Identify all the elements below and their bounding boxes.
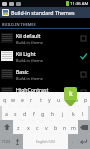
staticText: p [84, 96, 88, 103]
staticText: l [82, 110, 84, 117]
button[interactable]: r [27, 92, 36, 106]
button[interactable]: Voice input [12, 134, 23, 149]
button[interactable]: o [72, 92, 81, 106]
staticText: u [57, 96, 61, 103]
staticText: English (US) [36, 139, 55, 144]
button[interactable]: Kii Light [0, 47, 90, 65]
staticText: ?123 [2, 139, 11, 144]
button[interactable]: e [18, 92, 27, 106]
staticText: n [63, 124, 67, 131]
staticText: z [17, 124, 20, 131]
button[interactable]: English (US) [23, 134, 68, 149]
button[interactable]: b [51, 120, 60, 134]
button[interactable]: Backspace [78, 120, 90, 134]
button[interactable]: w [9, 92, 18, 106]
button[interactable]: t [36, 92, 45, 106]
staticText: Build-in theme [16, 76, 43, 81]
button[interactable]: Enter [77, 134, 90, 149]
staticText: h [51, 110, 55, 117]
staticText: HighContrast [16, 86, 49, 93]
staticText: s [14, 110, 17, 117]
staticText: d [23, 110, 27, 117]
button[interactable]: i [63, 92, 72, 106]
button[interactable]: h [48, 106, 58, 120]
staticText: t [40, 96, 42, 103]
staticText: v [45, 124, 48, 131]
button[interactable]: a [2, 106, 11, 120]
staticText: Basic [16, 68, 29, 75]
staticText: Build-in standard Themes [11, 9, 75, 16]
button[interactable]: j [58, 106, 68, 120]
staticText: Kii Light [16, 50, 36, 57]
staticText: Build-in theme [16, 40, 43, 45]
button[interactable]: Basic [0, 65, 90, 83]
button[interactable]: Symbols [0, 134, 12, 149]
button[interactable]: y [45, 92, 54, 106]
staticText: w [11, 96, 16, 103]
button[interactable]: l [78, 106, 88, 120]
button[interactable]: g [38, 106, 48, 120]
button[interactable]: z [13, 120, 23, 134]
button[interactable]: Shift [0, 120, 13, 134]
staticText: k [69, 89, 73, 99]
staticText: b [54, 124, 58, 131]
button[interactable]: x [23, 120, 33, 134]
staticText: o [75, 96, 79, 103]
staticText: y [48, 96, 51, 103]
button[interactable]: q [0, 92, 9, 106]
button[interactable]: s [11, 106, 20, 120]
staticText: i [67, 96, 69, 103]
button[interactable]: p [81, 92, 90, 106]
staticText: e [21, 96, 24, 103]
staticText: g [41, 110, 45, 117]
button[interactable]: k [68, 106, 78, 120]
staticText: Kii default [16, 32, 41, 39]
staticText: BUILD-IN THEMES [2, 22, 36, 27]
staticText: k [72, 110, 75, 117]
staticText: r [30, 96, 33, 103]
button[interactable]: f [29, 106, 38, 120]
button[interactable]: Kii default [0, 29, 90, 47]
staticText: 11:36 AM [70, 1, 89, 7]
button[interactable]: v [42, 120, 51, 134]
staticText: c [36, 124, 39, 131]
staticText: . [72, 138, 74, 145]
staticText: m [71, 124, 76, 131]
button[interactable]: d [20, 106, 29, 120]
staticText: q [3, 96, 7, 103]
button[interactable]: m [69, 120, 78, 134]
staticText: Build-in theme [16, 58, 43, 63]
staticText: j [62, 110, 64, 117]
button[interactable]: n [60, 120, 69, 134]
staticText: f [33, 110, 35, 117]
staticText: x [27, 124, 30, 131]
button[interactable]: c [33, 120, 42, 134]
button[interactable]: u [54, 92, 63, 106]
button[interactable]: HighContrast [0, 83, 90, 101]
staticText: a [5, 110, 8, 117]
